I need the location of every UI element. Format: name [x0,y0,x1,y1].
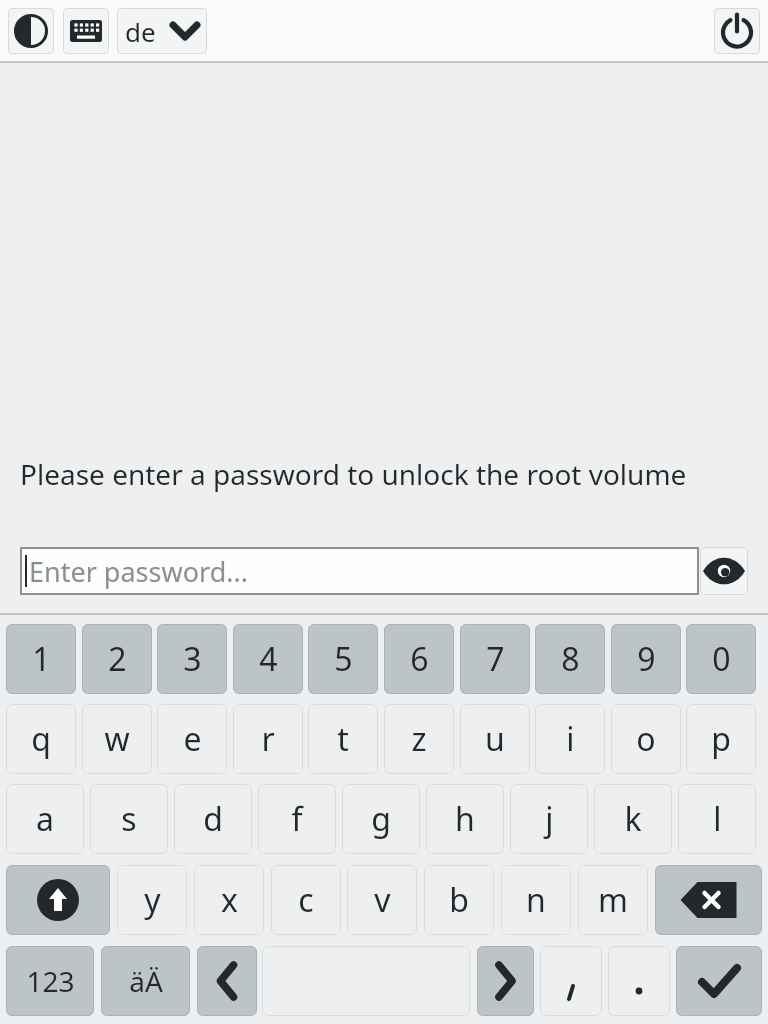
button[interactable]: l [678,784,756,854]
staticText: h [455,797,475,841]
button[interactable]: 5 [308,624,378,694]
staticText: p [711,717,731,761]
button[interactable]: q [6,704,76,774]
button[interactable]: e [157,704,227,774]
staticText: 0 [712,637,731,681]
button[interactable]: 6 [384,624,454,694]
button[interactable]: w [82,704,152,774]
button[interactable]: k [594,784,672,854]
staticText: c [298,878,314,922]
staticText: äÄ [129,962,163,1000]
staticText: b [449,878,469,922]
staticText: e [183,717,202,761]
button[interactable]: 8 [535,624,605,694]
staticText: 2 [108,637,127,681]
button[interactable]: Show password [700,547,748,595]
button[interactable]: 9 [611,624,681,694]
staticText: Please enter a password to unlock the ro… [20,455,687,493]
button[interactable]: u [460,704,530,774]
staticText: i [566,717,575,761]
staticText: Enter password... [29,553,248,590]
button[interactable]: 7 [460,624,530,694]
staticText: n [526,878,546,922]
button[interactable]: äÄ [101,946,190,1016]
button[interactable]: y [117,865,187,935]
button[interactable]: Period [608,946,670,1016]
button[interactable]: j [510,784,588,854]
staticText: y [144,878,161,922]
button[interactable]: d [174,784,252,854]
button[interactable]: t [308,704,378,774]
button[interactable]: b [424,865,494,935]
button[interactable]: Toggle on-screen keyboard [63,8,109,54]
staticText: x [221,878,238,922]
button[interactable]: i [535,704,605,774]
button[interactable]: f [258,784,336,854]
button[interactable]: m [578,865,648,935]
staticText: o [636,717,656,761]
button[interactable]: o [611,704,681,774]
button[interactable]: v [347,865,417,935]
staticText: a [36,797,54,841]
staticText: v [374,878,391,922]
button[interactable]: x [194,865,264,935]
staticText: 5 [334,637,353,681]
staticText: s [121,797,137,841]
button[interactable]: 2 [82,624,152,694]
staticText: z [411,717,427,761]
button[interactable]: n [501,865,571,935]
staticText: 6 [410,637,429,681]
staticText: l [713,797,722,841]
staticText: q [31,717,51,761]
button[interactable]: Space [262,946,470,1016]
staticText: 8 [561,637,580,681]
staticText: u [485,717,505,761]
button[interactable]: 123 [6,946,94,1016]
button[interactable]: de [117,8,207,54]
staticText: r [261,717,275,761]
staticText: 9 [637,637,656,681]
staticText: f [291,797,303,841]
button[interactable]: Cursor right [477,946,534,1016]
staticText: 4 [259,637,278,681]
button[interactable]: 0 [686,624,756,694]
button[interactable]: p [686,704,756,774]
button[interactable]: Enter password... [20,547,699,595]
button[interactable]: 3 [157,624,227,694]
button[interactable]: h [426,784,504,854]
staticText: j [545,797,554,841]
button[interactable]: s [90,784,168,854]
button[interactable]: Cursor left [197,946,257,1016]
staticText: de [125,14,156,49]
staticText: k [624,797,642,841]
button[interactable]: Confirm [676,946,762,1016]
button[interactable]: g [342,784,420,854]
staticText: 1 [32,637,51,681]
staticText: g [371,797,391,841]
staticText: 123 [26,962,75,1000]
button[interactable]: c [271,865,341,935]
button[interactable]: a [6,784,84,854]
button[interactable]: 4 [233,624,303,694]
button[interactable]: Shift [6,865,110,935]
button[interactable]: 1 [6,624,76,694]
staticText: w [104,717,130,761]
staticText: m [598,878,628,922]
staticText: 3 [183,637,202,681]
button[interactable]: Comma [540,946,602,1016]
button[interactable]: r [233,704,303,774]
staticText: 7 [486,637,505,681]
staticText: t [337,717,349,761]
button[interactable]: z [384,704,454,774]
button[interactable]: Power [714,8,760,54]
staticText: d [203,797,223,841]
button[interactable]: Toggle contrast [8,8,54,54]
button[interactable]: Backspace [655,865,762,935]
